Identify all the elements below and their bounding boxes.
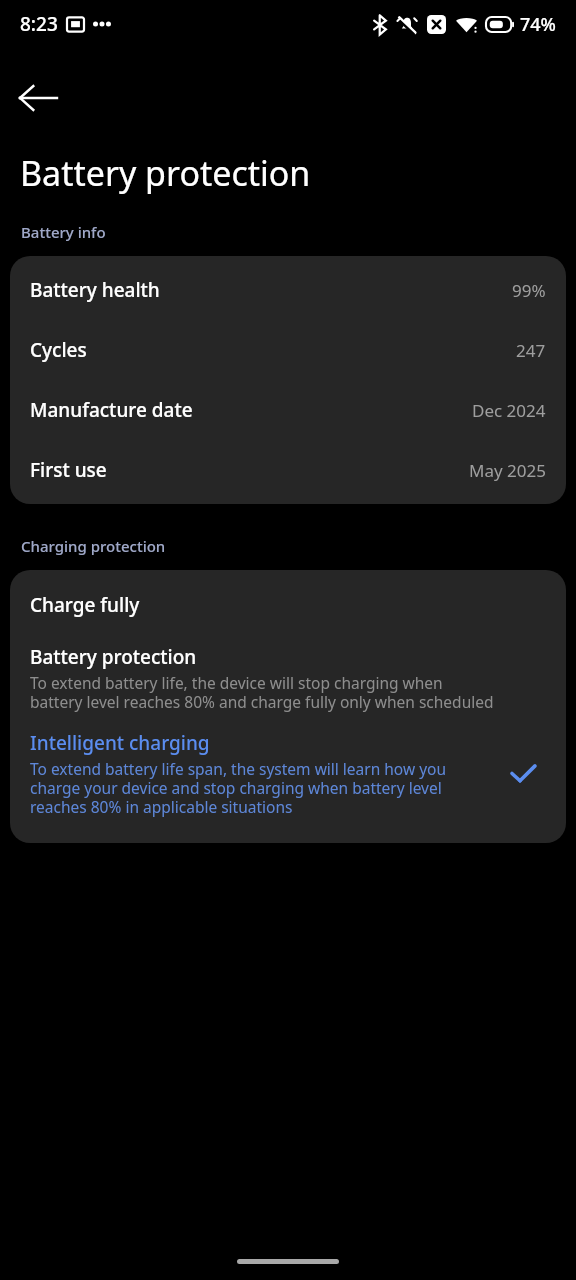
staticText: May 2025 — [469, 459, 546, 482]
staticText: First use — [30, 457, 107, 483]
staticText: Intelligent charging — [30, 730, 210, 756]
staticText: Charge fully — [30, 592, 140, 618]
staticText: 99% — [512, 279, 546, 302]
button[interactable]: Intelligent charging — [10, 724, 566, 829]
button[interactable]: Back — [20, 70, 76, 126]
button[interactable]: Battery health — [10, 266, 566, 314]
button[interactable]: Charge fully — [10, 570, 566, 638]
staticText: To extend battery life span, the system … — [30, 758, 496, 817]
staticText: Battery protection — [30, 644, 197, 670]
button[interactable]: First use — [10, 446, 566, 494]
staticText: 74% — [520, 12, 556, 37]
staticText: 247 — [516, 339, 546, 362]
button[interactable]: Cycles — [10, 326, 566, 374]
staticText: Cycles — [30, 337, 87, 363]
staticText: Charging protection — [21, 536, 166, 556]
staticText: Manufacture date — [30, 397, 193, 423]
staticText: To extend battery life, the device will … — [30, 672, 496, 712]
staticText: Dec 2024 — [472, 399, 546, 422]
staticText: Battery health — [30, 277, 160, 303]
staticText: 8:23 — [20, 11, 58, 37]
button[interactable]: Battery protection — [10, 638, 566, 724]
staticText: Battery protection — [20, 150, 311, 196]
staticText: Battery info — [21, 222, 106, 242]
button[interactable]: Manufacture date — [10, 386, 566, 434]
